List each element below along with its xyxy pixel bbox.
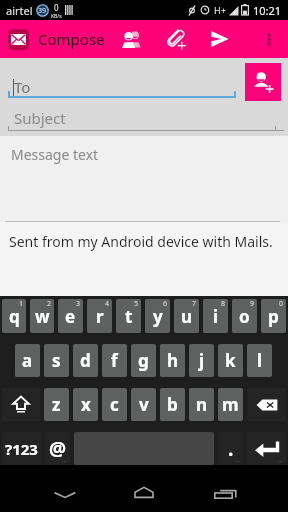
staticText: 8 bbox=[221, 299, 226, 309]
button[interactable]: j bbox=[189, 344, 214, 377]
staticText: 7 bbox=[192, 299, 197, 309]
staticText: d bbox=[80, 349, 91, 372]
staticText: 4 bbox=[105, 299, 110, 309]
button[interactable]: . bbox=[218, 432, 243, 465]
staticText: b bbox=[167, 393, 178, 416]
button[interactable]: k bbox=[218, 344, 243, 377]
staticText: h bbox=[167, 349, 179, 372]
button[interactable]: ?123 bbox=[2, 432, 41, 465]
staticText: k bbox=[225, 349, 236, 372]
button[interactable]: r bbox=[87, 299, 112, 333]
button[interactable]: i bbox=[203, 299, 228, 333]
staticText: 0 bbox=[54, 2, 59, 13]
staticText: x bbox=[81, 393, 91, 416]
button[interactable]: Enter bbox=[247, 432, 286, 465]
button[interactable]: l bbox=[247, 344, 272, 377]
staticText: u bbox=[181, 305, 193, 328]
button[interactable]: t bbox=[116, 299, 141, 333]
button[interactable]: m bbox=[218, 388, 243, 421]
staticText: v bbox=[139, 393, 149, 416]
staticText: j bbox=[199, 349, 205, 372]
staticText: r bbox=[96, 305, 104, 328]
button[interactable]: Backspace bbox=[247, 388, 286, 421]
button[interactable]: Pick contact bbox=[245, 63, 281, 101]
staticText: KB/s bbox=[51, 13, 62, 20]
staticText: ... bbox=[235, 456, 240, 464]
staticText: To bbox=[14, 77, 31, 97]
button[interactable]: w bbox=[30, 299, 54, 333]
staticText: @ bbox=[49, 436, 67, 462]
staticText: p bbox=[268, 305, 279, 328]
staticText: e bbox=[65, 305, 76, 328]
staticText: 5 bbox=[134, 299, 139, 309]
button[interactable]: Back bbox=[41, 477, 89, 512]
staticText: o bbox=[239, 305, 250, 328]
button[interactable]: Home bbox=[120, 475, 168, 511]
button[interactable]: u bbox=[174, 299, 199, 333]
button[interactable]: b bbox=[160, 388, 185, 421]
button[interactable]: g bbox=[131, 344, 156, 377]
staticText: g bbox=[138, 349, 149, 372]
staticText: 10:21 bbox=[253, 3, 282, 18]
staticText: 1 bbox=[19, 299, 24, 309]
staticText: z bbox=[52, 393, 61, 416]
button[interactable]: c bbox=[102, 388, 127, 421]
staticText: s bbox=[52, 349, 61, 372]
staticText: . bbox=[228, 436, 234, 462]
staticText: y bbox=[153, 305, 163, 328]
staticText: Sent from my Android device with Mails. bbox=[9, 232, 273, 251]
button[interactable]: z bbox=[44, 388, 69, 421]
button[interactable]: @ bbox=[45, 432, 70, 465]
button[interactable]: d bbox=[73, 344, 98, 377]
staticText: i bbox=[213, 305, 219, 328]
staticText: m bbox=[222, 393, 239, 416]
staticText: H+ bbox=[214, 4, 226, 16]
button[interactable]: a bbox=[15, 344, 40, 377]
staticText: 9 bbox=[250, 299, 255, 309]
staticText: a bbox=[22, 349, 33, 372]
staticText: f bbox=[111, 349, 118, 372]
staticText: 2 bbox=[47, 299, 52, 309]
staticText: Compose bbox=[38, 29, 105, 49]
staticText: Message text bbox=[11, 145, 99, 164]
button[interactable]: Recent apps bbox=[201, 475, 249, 511]
button[interactable]: p bbox=[261, 299, 286, 333]
button[interactable]: More options bbox=[255, 20, 283, 58]
button[interactable]: n bbox=[189, 388, 214, 421]
button[interactable]: Send bbox=[204, 20, 236, 58]
button[interactable]: o bbox=[232, 299, 257, 333]
staticText: c bbox=[110, 393, 119, 416]
staticText: ... bbox=[62, 456, 67, 464]
button[interactable]: x bbox=[73, 388, 98, 421]
staticText: ... bbox=[278, 456, 283, 464]
staticText: 6 bbox=[163, 299, 168, 309]
button[interactable]: q bbox=[2, 299, 26, 333]
staticText: q bbox=[9, 305, 20, 328]
button[interactable]: Add contacts bbox=[114, 20, 148, 58]
button[interactable]: Attach file bbox=[159, 19, 194, 57]
button[interactable]: s bbox=[44, 344, 69, 377]
staticText: 39 bbox=[38, 6, 47, 16]
button[interactable]: e bbox=[58, 299, 83, 333]
staticText: ?123 bbox=[5, 439, 38, 459]
staticText: Subject bbox=[14, 108, 66, 128]
staticText: 0 bbox=[279, 299, 284, 309]
staticText: 3 bbox=[76, 299, 81, 309]
staticText: airtel bbox=[6, 3, 33, 18]
button[interactable]: f bbox=[102, 344, 127, 377]
button[interactable]: Shift bbox=[2, 388, 40, 421]
button[interactable]: v bbox=[131, 388, 156, 421]
staticText: l bbox=[257, 349, 263, 372]
staticText: w bbox=[35, 305, 50, 328]
button[interactable]: h bbox=[160, 344, 185, 377]
button[interactable]: y bbox=[145, 299, 170, 333]
staticText: n bbox=[196, 393, 208, 416]
staticText: t bbox=[125, 305, 133, 328]
